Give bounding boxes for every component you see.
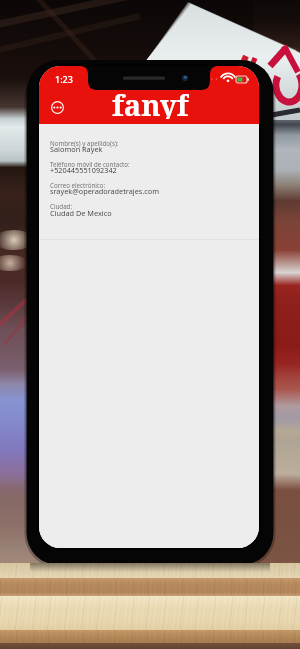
staticText: fanyf bbox=[112, 85, 189, 119]
staticText: Salomon Rayek bbox=[50, 144, 103, 154]
staticText: Ciudad De Mexico bbox=[50, 208, 112, 218]
staticText: Teléfono móvil de contacto: bbox=[50, 160, 130, 168]
staticText: +520445551092342 bbox=[50, 165, 117, 175]
staticText: Ciudad: bbox=[50, 202, 73, 210]
staticText: srayek@operadoradetrajes.com bbox=[50, 186, 159, 196]
staticText: Correo electrónico: bbox=[50, 181, 106, 189]
staticText: 1:23 bbox=[55, 73, 73, 85]
staticText: Nombre(s) y apellido(s): bbox=[50, 139, 119, 147]
button[interactable]: Menu bbox=[45, 95, 69, 119]
